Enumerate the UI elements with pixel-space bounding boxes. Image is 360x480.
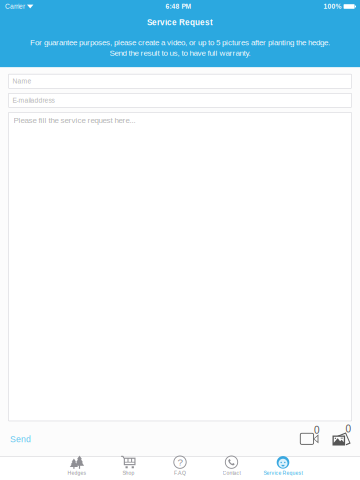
staticText: 0 xyxy=(314,425,320,436)
staticText: Service Request xyxy=(263,470,302,476)
button[interactable]: Contact xyxy=(206,457,257,480)
staticText: 100% xyxy=(324,3,342,10)
button[interactable]: Add photos xyxy=(332,424,351,446)
staticText: Contact xyxy=(222,470,240,476)
button[interactable]: Record video xyxy=(300,424,320,446)
staticText: F.A.Q xyxy=(174,470,186,476)
staticText: Shop xyxy=(122,470,134,476)
staticText: Send xyxy=(10,434,31,444)
staticText: For guarantee purposes, please create a … xyxy=(30,38,330,47)
button[interactable]: Hedges xyxy=(51,457,103,480)
staticText: Service Request xyxy=(147,18,213,27)
staticText: Name xyxy=(12,77,31,85)
staticText: Hedges xyxy=(67,470,86,476)
staticText: E-mailaddress xyxy=(12,97,54,104)
staticText: 6:48 PM xyxy=(165,3,191,10)
button[interactable]: Service Request xyxy=(257,457,309,480)
staticText: Send the result to us, to have full warr… xyxy=(109,48,250,57)
button[interactable]: Shop xyxy=(103,457,154,480)
staticText: Please fill the service request here... xyxy=(13,116,135,125)
button[interactable]: ? xyxy=(154,457,206,480)
staticText: ? xyxy=(177,457,182,468)
staticText: Carrier xyxy=(5,3,25,10)
staticText: 0 xyxy=(345,423,351,435)
button[interactable]: Send xyxy=(8,432,37,446)
